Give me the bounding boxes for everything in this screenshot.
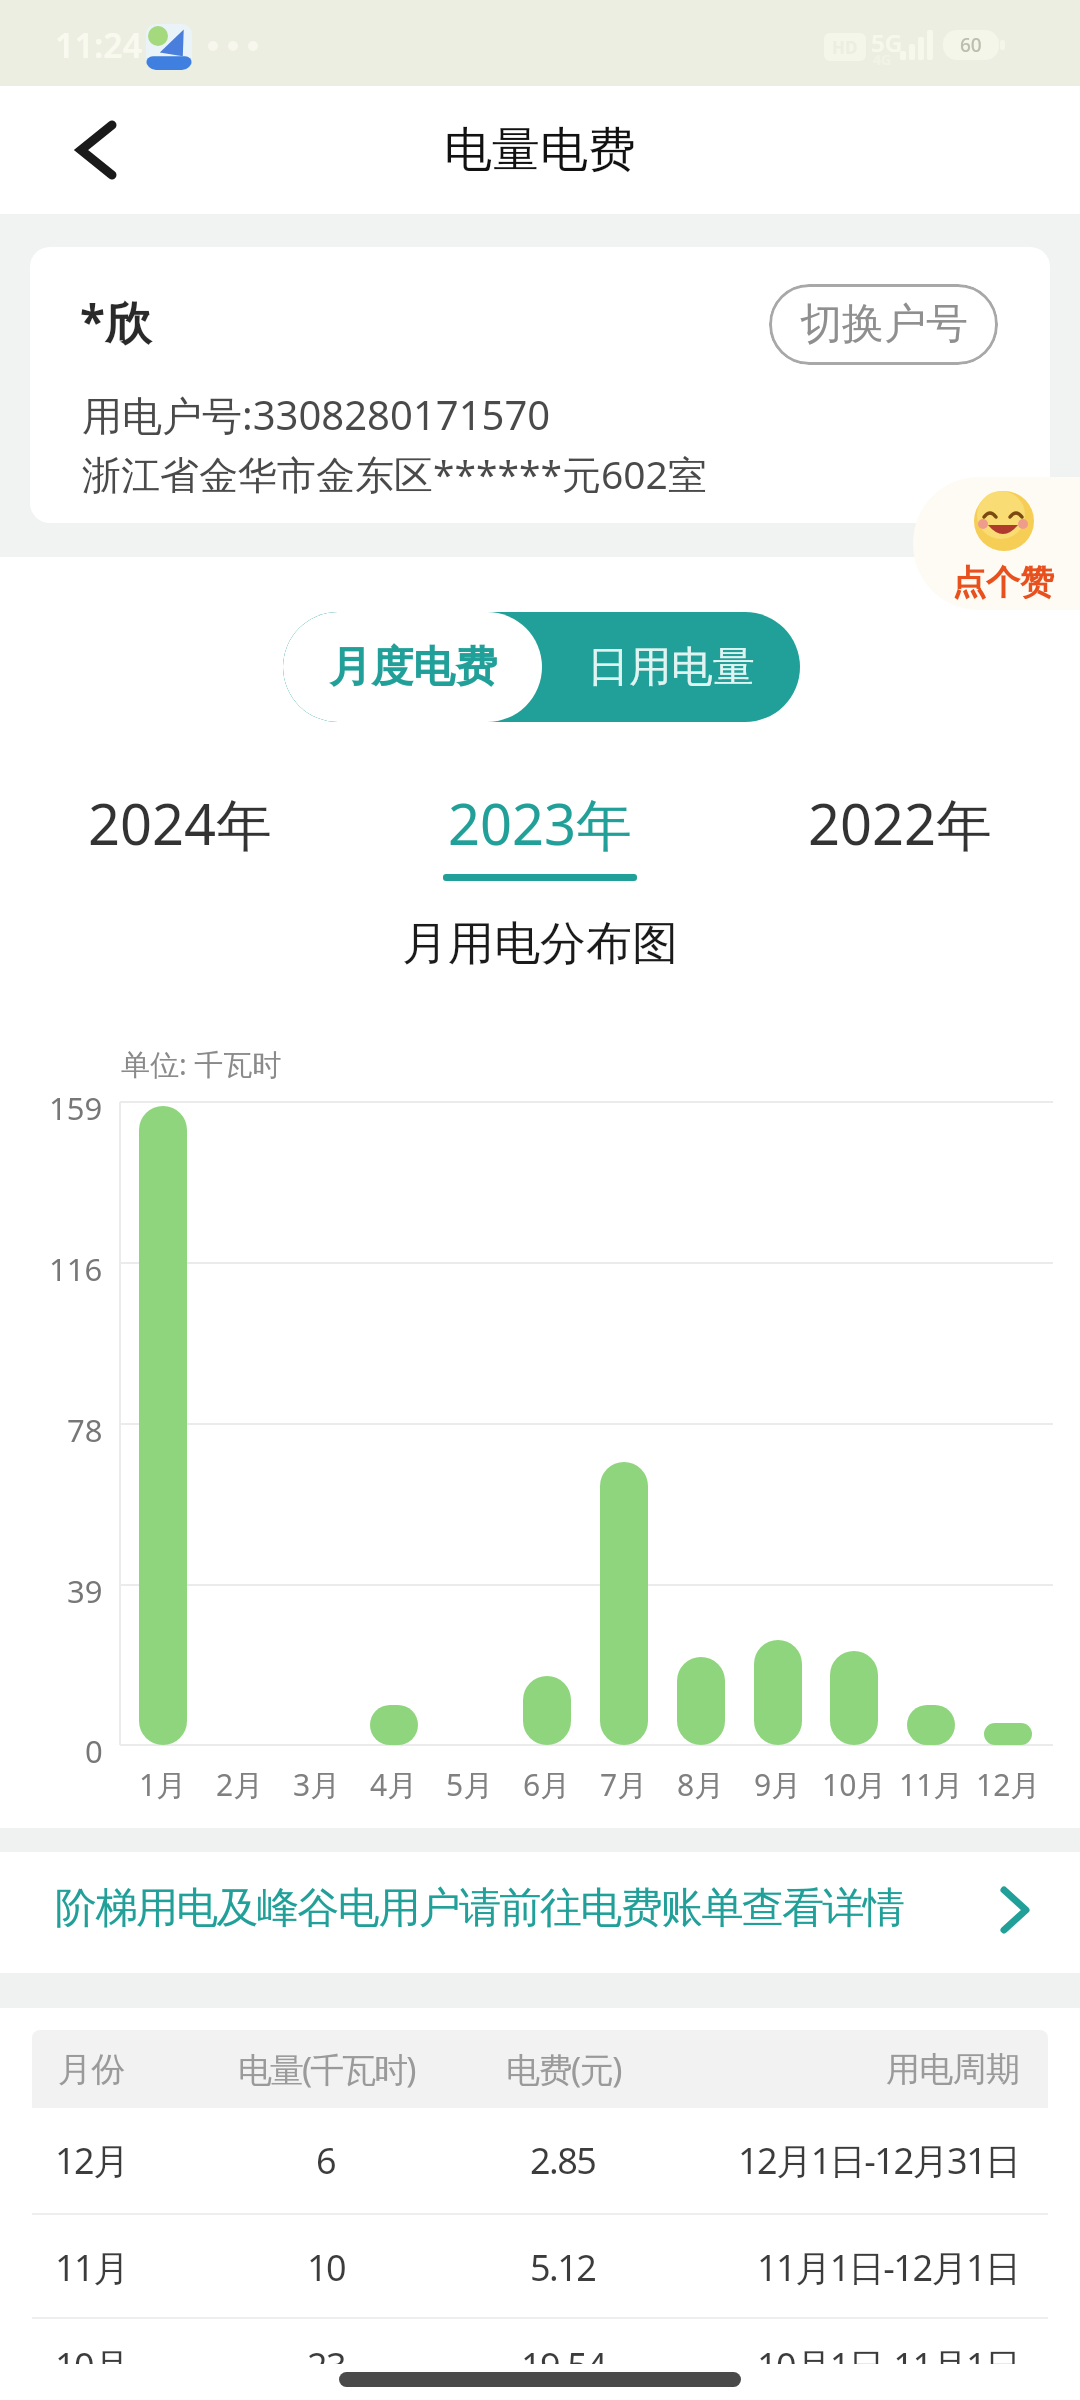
staticText: 12月1日-12月31日	[738, 2136, 1020, 2185]
staticText: 11:24	[55, 22, 143, 68]
button[interactable]: 12月	[32, 2108, 1048, 2213]
button[interactable]: 2022年	[760, 785, 1040, 860]
staticText: 阶梯用电及峰谷电用户请前往电费账单查看详情	[55, 1882, 904, 1935]
button[interactable]: 点个赞	[913, 477, 1080, 610]
staticText: 电量(千瓦时)	[238, 2046, 415, 2092]
staticText: 1月	[139, 1764, 187, 1805]
staticText: 12月	[55, 2136, 128, 2185]
staticText: 6	[316, 2136, 336, 2185]
button[interactable]: 阶梯用电及峰谷电用户请前往电费账单查看详情	[0, 1852, 1080, 1973]
staticText: 19.54	[521, 2341, 606, 2390]
staticText: 8月	[677, 1764, 725, 1805]
staticText: 10	[307, 2243, 346, 2292]
staticText: 电费(元)	[506, 2046, 621, 2092]
staticText: 浙江省金华市金东区******元602室	[82, 447, 707, 500]
button[interactable]: 切换户号	[769, 284, 998, 365]
staticText: 10月	[822, 1764, 887, 1805]
staticText: 2月	[216, 1764, 264, 1805]
staticText: 2023年	[448, 785, 633, 860]
staticText: 78	[67, 1409, 103, 1451]
staticText: 电量电费	[444, 120, 636, 180]
staticText: 切换户号	[800, 298, 968, 351]
staticText: 6月	[523, 1764, 571, 1805]
staticText: 5月	[446, 1764, 494, 1805]
staticText: 11月	[55, 2243, 128, 2292]
staticText: 5.12	[530, 2243, 596, 2292]
staticText: 9月	[754, 1764, 802, 1805]
staticText: 点个赞	[952, 561, 1054, 604]
staticText: 159	[49, 1087, 103, 1129]
staticText: 23	[307, 2341, 346, 2390]
staticText: 39	[67, 1570, 103, 1612]
staticText: 10月1日-11月1日	[757, 2341, 1020, 2390]
staticText: 11月1日-12月1日	[757, 2243, 1020, 2292]
staticText: 月份	[58, 2048, 125, 2091]
staticText: 2022年	[808, 785, 993, 860]
staticText: 用电户号:3308280171570	[82, 387, 551, 442]
staticText: 2024年	[88, 785, 273, 860]
staticText: *欣	[80, 290, 151, 353]
button[interactable]: 日用电量	[542, 612, 800, 722]
staticText: 60	[960, 32, 982, 58]
button[interactable]: 2024年	[40, 785, 320, 860]
staticText: 7月	[600, 1764, 648, 1805]
staticText: 11月	[899, 1764, 964, 1805]
staticText: 月度电费	[329, 641, 497, 694]
button[interactable]	[55, 106, 135, 194]
button[interactable]: 10月	[32, 2313, 1048, 2400]
staticText: 116	[49, 1248, 103, 1290]
staticText: 日用电量	[587, 641, 755, 694]
staticText: 月用电分布图	[402, 915, 678, 973]
staticText: 5G	[871, 26, 903, 59]
staticText: 4月	[370, 1764, 418, 1805]
staticText: 0	[85, 1730, 103, 1772]
button[interactable]: 月度电费	[283, 612, 542, 722]
staticText: 10月	[55, 2341, 128, 2390]
staticText: 3月	[293, 1764, 341, 1805]
staticText: 单位: 千瓦时	[121, 1044, 282, 1084]
staticText: 12月	[976, 1764, 1041, 1805]
staticText: 用电周期	[886, 2048, 1020, 2091]
button[interactable]: 2023年	[400, 785, 680, 860]
staticText: HD	[832, 36, 858, 59]
staticText: 2.85	[530, 2136, 596, 2185]
button[interactable]: 11月	[32, 2215, 1048, 2320]
